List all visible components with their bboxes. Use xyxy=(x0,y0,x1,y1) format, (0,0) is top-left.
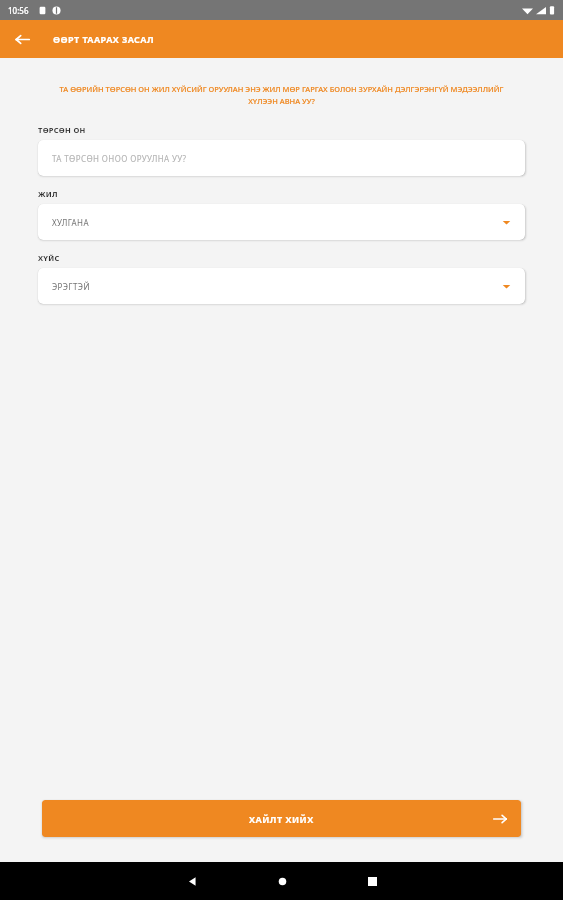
staticText: ӨӨРТ ТААРАХ ЗАСАЛ xyxy=(53,33,154,45)
button[interactable]: ХАЙЛТ ХИЙХ xyxy=(42,800,521,837)
button[interactable]: Home xyxy=(259,862,305,900)
button[interactable]: ЭРЭГТЭЙ xyxy=(38,268,525,304)
button[interactable]: Back xyxy=(169,862,215,900)
button[interactable]: ТА ТӨРСӨН ОНОО ОРУУЛНА УУ? xyxy=(38,140,525,176)
button[interactable]: Recent apps xyxy=(349,862,395,900)
staticText: ЖИЛ xyxy=(38,189,58,199)
button[interactable]: Back xyxy=(10,27,34,51)
button[interactable]: ХУЛГАНА xyxy=(38,204,525,240)
staticText: ТА ӨӨРИЙН ТӨРСӨН ОН ЖИЛ ХҮЙСИЙГ ОРУУЛАН … xyxy=(52,84,511,107)
staticText: ХАЙЛТ ХИЙХ xyxy=(249,813,314,825)
staticText: ЭРЭГТЭЙ xyxy=(52,281,502,292)
staticText: ТӨРСӨН ОН xyxy=(38,125,86,135)
staticText: ТА ТӨРСӨН ОНОО ОРУУЛНА УУ? xyxy=(52,153,511,164)
staticText: ХУЛГАНА xyxy=(52,217,502,228)
staticText: ХҮЙС xyxy=(38,253,60,263)
staticText: 10:56 xyxy=(8,5,29,16)
